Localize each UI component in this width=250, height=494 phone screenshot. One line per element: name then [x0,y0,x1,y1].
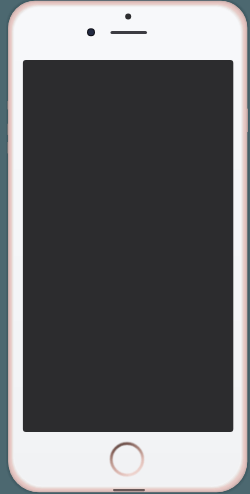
button[interactable]: iPhone device mockup [0,0,250,494]
